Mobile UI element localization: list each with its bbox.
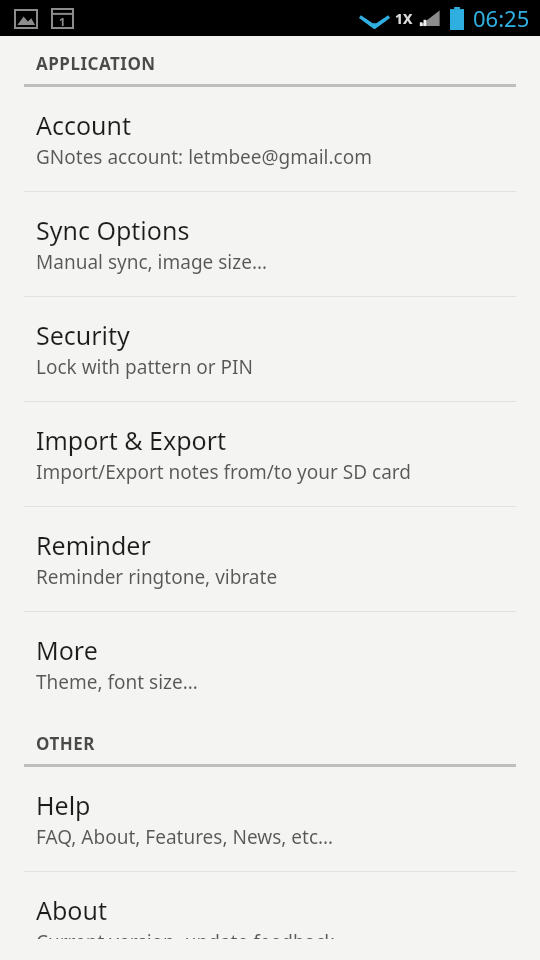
staticText: Security: [36, 318, 130, 352]
other: Screenshot captured: [14, 9, 38, 29]
staticText: Manual sync, image size…: [36, 249, 267, 275]
staticText: Lock with pattern or PIN: [36, 354, 253, 380]
other: 1 notification: [51, 8, 74, 29]
staticText: Reminder ringtone, vibrate: [36, 564, 278, 590]
staticText: Account: [36, 108, 132, 142]
staticText: Import/Export notes from/to your SD card: [36, 459, 411, 485]
button[interactable]: Sync Options: [0, 192, 540, 297]
staticText: APPLICATION: [36, 52, 156, 75]
staticText: 06:25: [473, 3, 530, 33]
other: Battery: [450, 7, 464, 30]
button[interactable]: More: [0, 612, 540, 716]
staticText: More: [36, 633, 98, 667]
staticText: Current version, update,feedback…: [36, 929, 350, 939]
button[interactable]: Import & Export: [0, 402, 540, 507]
button[interactable]: Reminder: [0, 507, 540, 612]
staticText: GNotes account: letmbee@gmail.com: [36, 144, 372, 170]
button[interactable]: Account: [0, 87, 540, 192]
staticText: 1X: [395, 9, 413, 28]
button[interactable]: About: [0, 872, 540, 960]
other: Mobile signal: [418, 8, 441, 29]
staticText: About: [36, 893, 107, 927]
staticText: Reminder: [36, 528, 151, 562]
staticText: 1: [59, 14, 66, 29]
other: Wi-Fi connected: [361, 8, 388, 29]
staticText: FAQ, About, Features, News, etc…: [36, 824, 334, 850]
staticText: Import & Export: [36, 423, 226, 457]
staticText: Help: [36, 788, 91, 822]
staticText: Sync Options: [36, 213, 190, 247]
button[interactable]: Security: [0, 297, 540, 402]
staticText: OTHER: [36, 732, 95, 755]
button[interactable]: Help: [0, 767, 540, 872]
staticText: Theme, font size…: [36, 669, 198, 695]
